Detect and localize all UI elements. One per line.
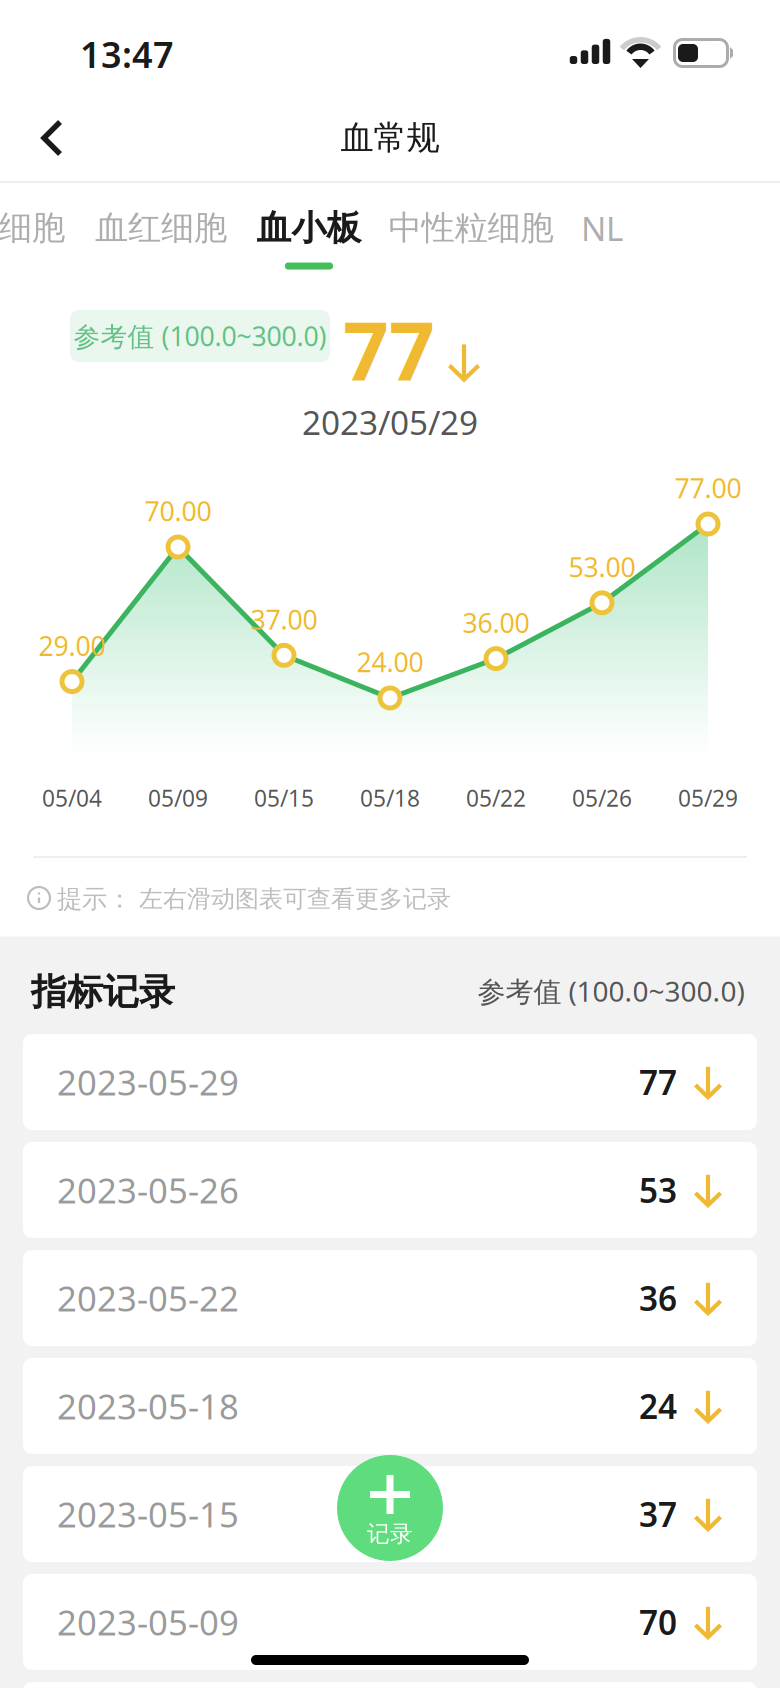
staticText: 中性粒细胞 <box>388 207 553 248</box>
button[interactable]: 2023-05-26 <box>23 1142 757 1238</box>
staticText: 37.00 <box>250 602 317 637</box>
staticText: 05/29 <box>678 783 738 813</box>
staticText: 2023-05-09 <box>57 1599 239 1645</box>
staticText: NL <box>581 206 623 250</box>
staticText: 提示： <box>57 883 132 914</box>
staticText: 血常规 <box>340 117 439 158</box>
staticText: 36.00 <box>462 605 529 640</box>
button[interactable]: 2023-05-15 <box>23 1466 757 1562</box>
staticText: 指标记录 <box>31 970 175 1014</box>
staticText: 2023-05-22 <box>57 1275 239 1321</box>
staticText: 2023-05-18 <box>57 1383 239 1429</box>
staticText: 2023/05/29 <box>302 400 478 444</box>
staticText: 05/15 <box>254 783 314 813</box>
staticText: 05/18 <box>360 783 420 813</box>
staticText: 53.00 <box>568 549 635 584</box>
staticText: 77 <box>639 1060 677 1104</box>
staticText: 左右滑动图表可查看更多记录 <box>139 884 451 914</box>
staticText: 血红细胞 <box>95 207 227 248</box>
staticText: 05/04 <box>42 783 102 813</box>
staticText: 2023-05-26 <box>57 1167 239 1213</box>
staticText: 05/09 <box>148 783 208 813</box>
button[interactable]: Back <box>14 98 94 178</box>
button[interactable]: 2023-05-29 <box>23 1034 757 1130</box>
staticText: 05/26 <box>572 783 632 813</box>
staticText: 血小板 <box>256 207 361 249</box>
staticText: 70.00 <box>144 493 211 529</box>
staticText: 29.00 <box>38 628 105 663</box>
staticText: 24.00 <box>356 644 423 680</box>
staticText: 77 <box>343 297 435 403</box>
staticText: 细胞 <box>0 207 65 248</box>
staticText: 2023-05-15 <box>57 1491 239 1537</box>
staticText: 参考值 (100.0~300.0) <box>73 318 326 354</box>
staticText: 05/22 <box>466 783 526 813</box>
staticText: 77.00 <box>674 470 741 506</box>
staticText: 记录 <box>367 1520 413 1548</box>
button[interactable]: 2023-05-22 <box>23 1250 757 1346</box>
staticText: 36 <box>639 1276 677 1320</box>
staticText: 53 <box>639 1168 677 1212</box>
button[interactable]: 记录 <box>337 1455 443 1561</box>
staticText: 13:47 <box>80 30 174 78</box>
staticText: 2023-05-29 <box>57 1059 239 1105</box>
staticText: 37 <box>639 1492 677 1536</box>
button[interactable]: 2023-05-09 <box>23 1574 757 1670</box>
button[interactable]: 2023-05-18 <box>23 1358 757 1454</box>
staticText: 24 <box>639 1384 677 1428</box>
staticText: 70 <box>639 1600 677 1644</box>
staticText: 参考值 (100.0~300.0) <box>477 972 744 1010</box>
